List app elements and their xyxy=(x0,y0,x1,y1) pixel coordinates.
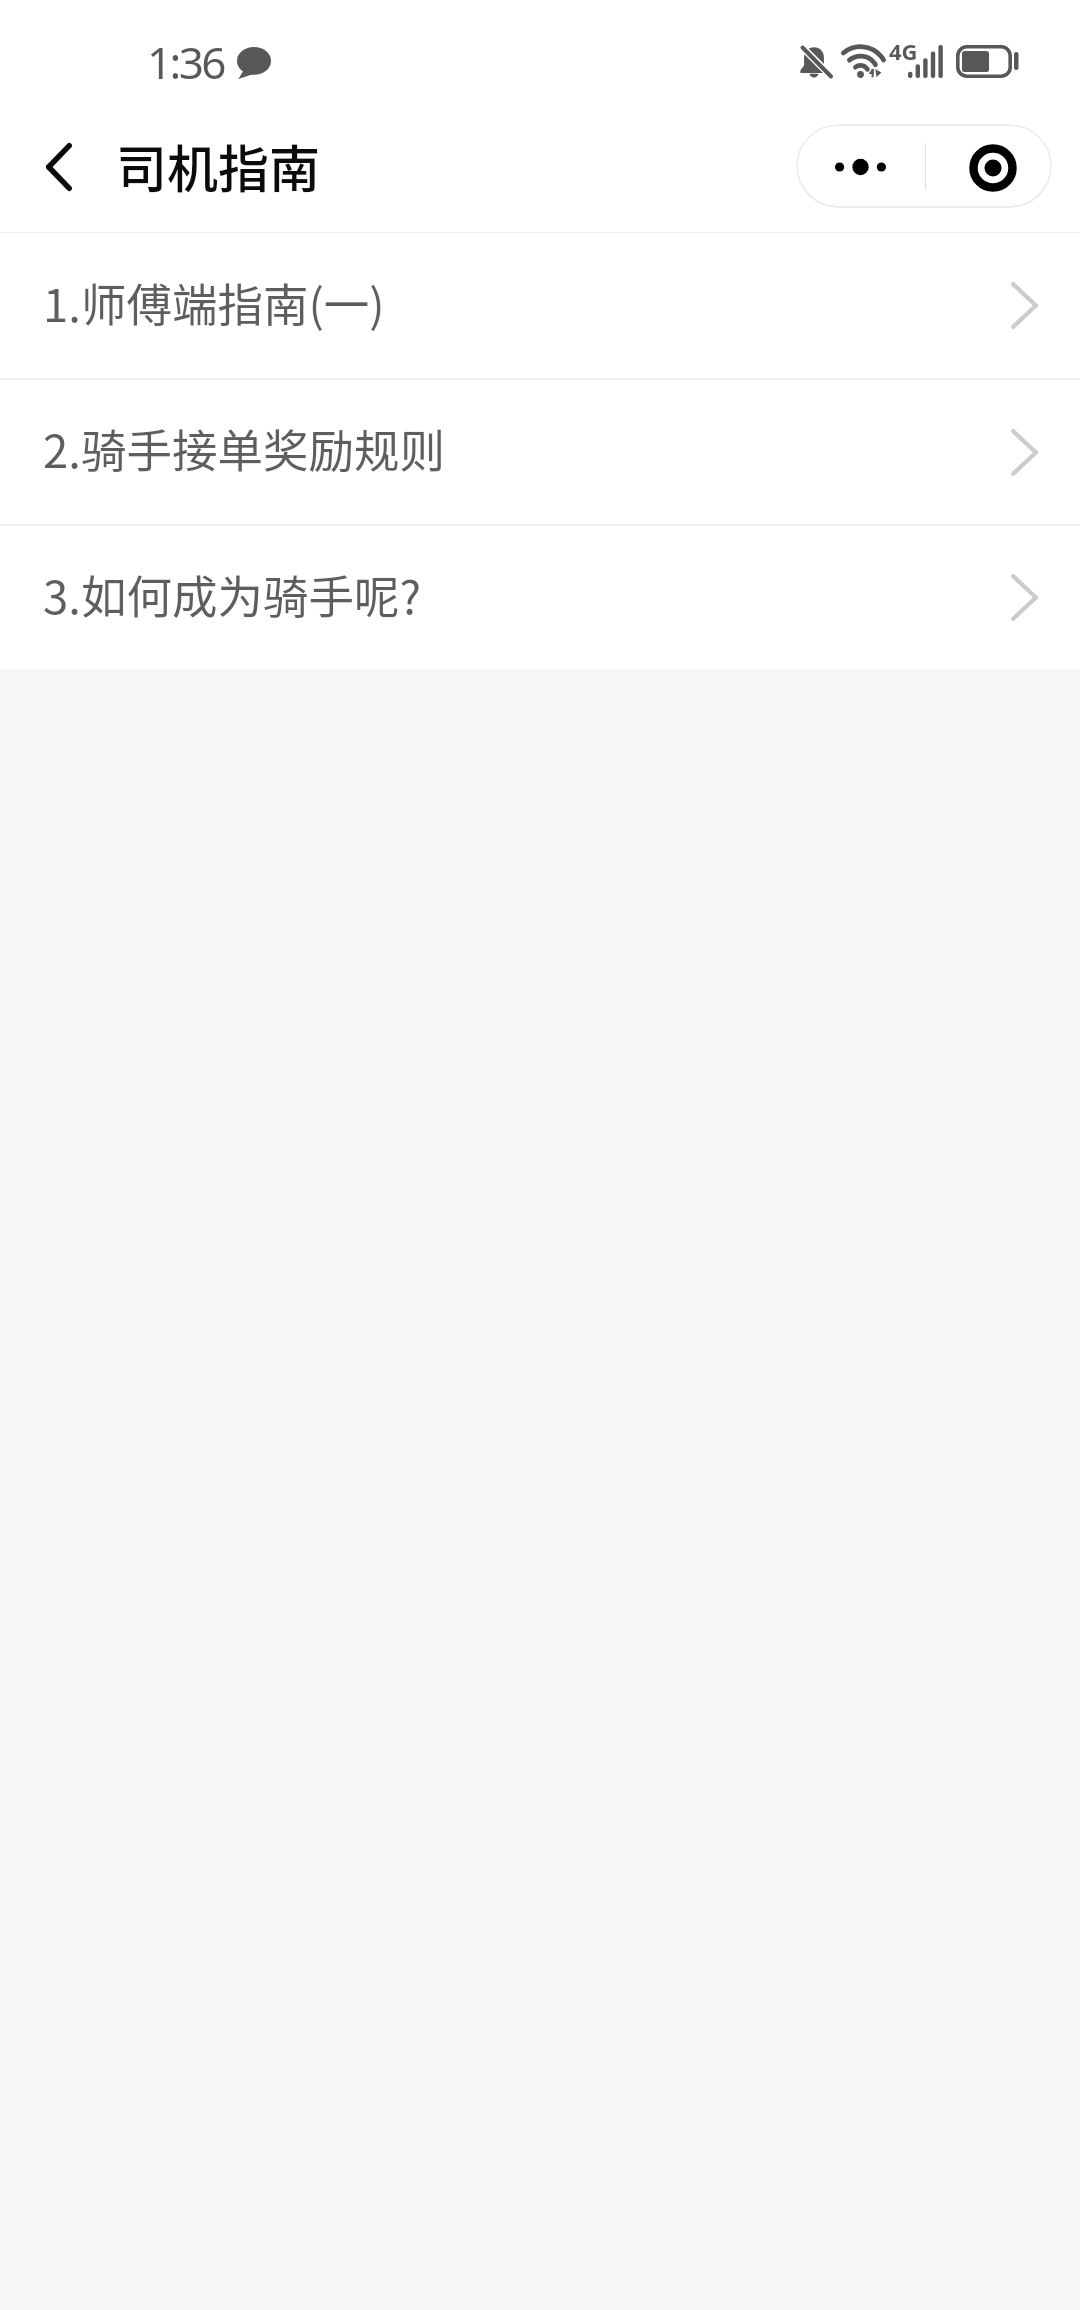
staticText: 1.师傅端指南(一) xyxy=(43,269,385,335)
button[interactable]: Close mini program xyxy=(926,124,1052,208)
staticText: 1:36 xyxy=(147,32,224,92)
staticText: 司机指南 xyxy=(116,129,321,203)
button[interactable]: 1.师傅端指南(一) xyxy=(0,233,1080,378)
button[interactable]: 2.骑手接单奖励规则 xyxy=(0,380,1080,524)
button[interactable]: Back xyxy=(12,128,104,216)
staticText: 3.如何成为骑手呢? xyxy=(43,561,421,627)
staticText: 4G xyxy=(889,36,918,66)
button[interactable]: More options xyxy=(796,124,925,208)
staticText: 2.骑手接单奖励规则 xyxy=(43,415,445,481)
button[interactable]: 3.如何成为骑手呢? xyxy=(0,526,1080,669)
